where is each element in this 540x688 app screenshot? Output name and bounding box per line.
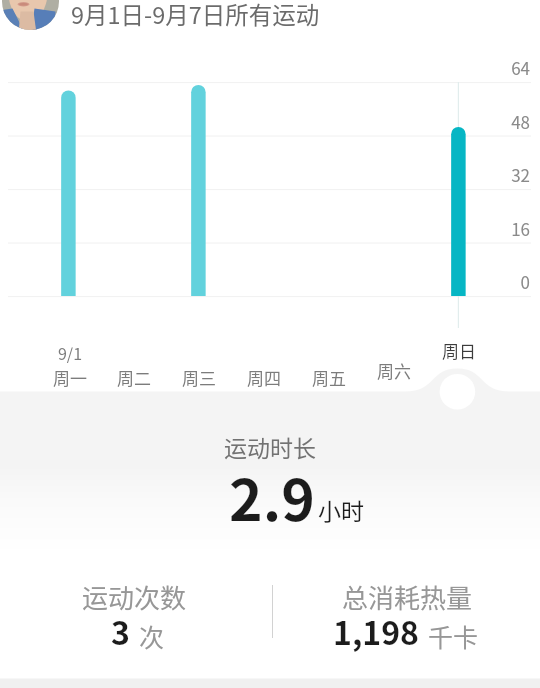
staticText: 周一 bbox=[38, 365, 102, 390]
staticText: 64 bbox=[489, 55, 530, 80]
staticText: 运动次数 bbox=[14, 578, 254, 616]
button[interactable]: Profile bbox=[2, 0, 59, 30]
staticText: 32 bbox=[489, 162, 530, 187]
button[interactable]: Day 7 bbox=[427, 60, 491, 380]
staticText: 9月1日-9月7日所有运动 bbox=[71, 0, 320, 31]
staticText: 2.9 bbox=[172, 455, 372, 538]
staticText: 运动时长 bbox=[150, 430, 390, 463]
button[interactable]: Day 1 bbox=[38, 60, 102, 380]
staticText: 周二 bbox=[102, 365, 166, 390]
button[interactable]: Day 5 bbox=[297, 60, 361, 380]
staticText: 周五 bbox=[297, 365, 361, 390]
staticText: 周日 bbox=[427, 338, 491, 363]
staticText: 周四 bbox=[232, 365, 296, 390]
button[interactable]: Day 6 bbox=[362, 60, 426, 380]
button[interactable]: Day 2 bbox=[102, 60, 166, 380]
button[interactable]: Day 3 bbox=[167, 60, 231, 380]
staticText: 千卡 bbox=[428, 618, 479, 654]
staticText: 周三 bbox=[167, 365, 231, 390]
button[interactable] bbox=[287, 578, 527, 658]
staticText: 48 bbox=[489, 109, 530, 134]
staticText: 总消耗热量 bbox=[287, 578, 527, 616]
staticText: 0 bbox=[489, 269, 530, 294]
button[interactable]: More bbox=[440, 374, 476, 410]
staticText: 9/1 bbox=[38, 341, 102, 364]
staticText: 16 bbox=[489, 216, 530, 241]
staticText: 3 bbox=[0, 608, 130, 654]
staticText: 小时 bbox=[318, 493, 364, 526]
staticText: 1,198 bbox=[219, 608, 419, 654]
button[interactable]: Day 4 bbox=[232, 60, 296, 380]
staticText: 次 bbox=[139, 618, 165, 654]
button[interactable] bbox=[14, 578, 254, 658]
staticText: 周六 bbox=[362, 358, 426, 383]
